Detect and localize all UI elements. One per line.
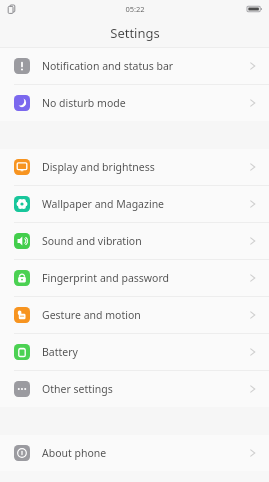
staticText: Other settings [42,382,113,396]
button[interactable]: Fingerprint and password [0,260,269,296]
staticText: Wallpaper and Magazine [42,197,165,211]
staticText: Notification and status bar [42,59,174,73]
button[interactable]: Other settings [0,371,269,407]
button[interactable]: No disturb mode [0,85,269,121]
button[interactable]: About phone [0,435,269,471]
staticText: Fingerprint and password [42,271,170,285]
button[interactable]: Display and brightness [0,149,269,185]
button[interactable]: Gesture and motion [0,297,269,333]
staticText: Sound and vibration [42,234,142,248]
staticText: Settings [110,24,160,42]
staticText: 05:22 [125,4,145,14]
button[interactable]: Wallpaper and Magazine [0,186,269,222]
staticText: Battery [42,345,78,359]
button[interactable]: Notification and status bar [0,48,269,84]
button[interactable]: Sound and vibration [0,223,269,259]
staticText: About phone [42,446,107,460]
staticText: Display and brightness [42,160,155,174]
staticText: Gesture and motion [42,308,141,322]
button[interactable]: Battery [0,334,269,370]
staticText: No disturb mode [42,96,126,110]
